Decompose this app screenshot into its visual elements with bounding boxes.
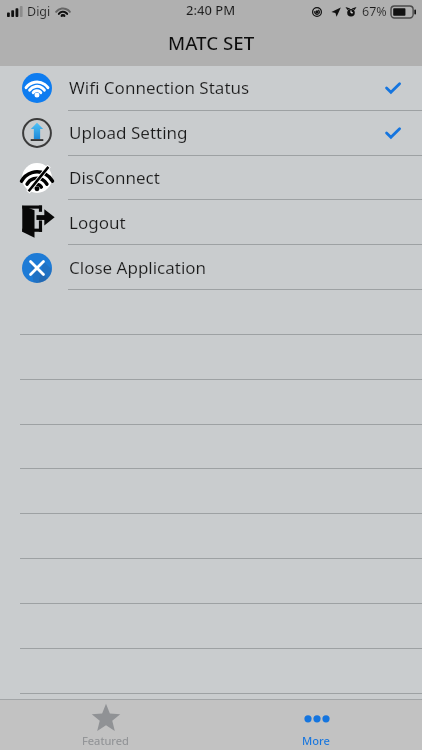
staticText: Upload Setting	[69, 121, 188, 144]
button[interactable]	[0, 559, 422, 604]
button[interactable]: More	[211, 700, 422, 750]
button[interactable]	[0, 424, 422, 469]
button[interactable]	[0, 469, 422, 514]
staticText: MATC SET	[168, 30, 255, 55]
button[interactable]	[0, 290, 422, 335]
staticText: Featured	[82, 733, 129, 748]
staticText: Wifi Connection Status	[69, 76, 250, 99]
staticText: DisConnect	[69, 166, 160, 189]
button[interactable]	[0, 648, 422, 693]
staticText: Logout	[69, 211, 126, 234]
button[interactable]: Logout	[0, 200, 422, 245]
staticText: More	[302, 733, 331, 748]
staticText: Close Application	[69, 256, 207, 279]
button[interactable]: Featured	[0, 700, 211, 750]
button[interactable]: Close Application	[0, 245, 422, 290]
staticText: Digi	[27, 3, 51, 20]
button[interactable]: Wifi Connection Status	[0, 65, 422, 110]
staticText: 2:40 PM	[186, 1, 236, 19]
button[interactable]	[0, 603, 422, 648]
button[interactable]	[0, 514, 422, 559]
button[interactable]	[0, 334, 422, 379]
button[interactable]: Upload Setting	[0, 110, 422, 155]
staticText: 67%	[362, 3, 387, 20]
button[interactable]	[0, 379, 422, 424]
button[interactable]: DisConnect	[0, 155, 422, 200]
